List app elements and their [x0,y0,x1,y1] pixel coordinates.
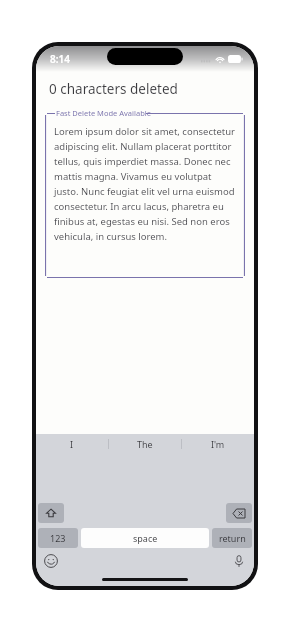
staticText: 123 [50,532,66,544]
button[interactable]: Emoji [44,554,58,568]
button[interactable]: Backspace [226,503,252,523]
button[interactable]: The [109,434,181,453]
staticText: The [137,438,153,450]
staticText: I'm [211,438,225,450]
button[interactable]: Lorem ipsum dolor sit amet, consectetur … [54,125,237,243]
staticText: I [70,438,74,450]
staticText: 8:14 [50,52,70,66]
staticText: space [133,532,158,544]
staticText: 0 characters deleted [49,80,178,98]
button[interactable]: I'm [182,434,254,453]
button[interactable]: space [81,528,209,548]
staticText: return [219,532,246,544]
button[interactable]: 123 [38,528,78,548]
button[interactable]: Shift [38,503,64,523]
button[interactable]: return [212,528,252,548]
staticText: Fast Delete Mode Available [56,108,151,118]
button[interactable]: Dictate [232,554,246,568]
button[interactable]: I [36,434,108,453]
